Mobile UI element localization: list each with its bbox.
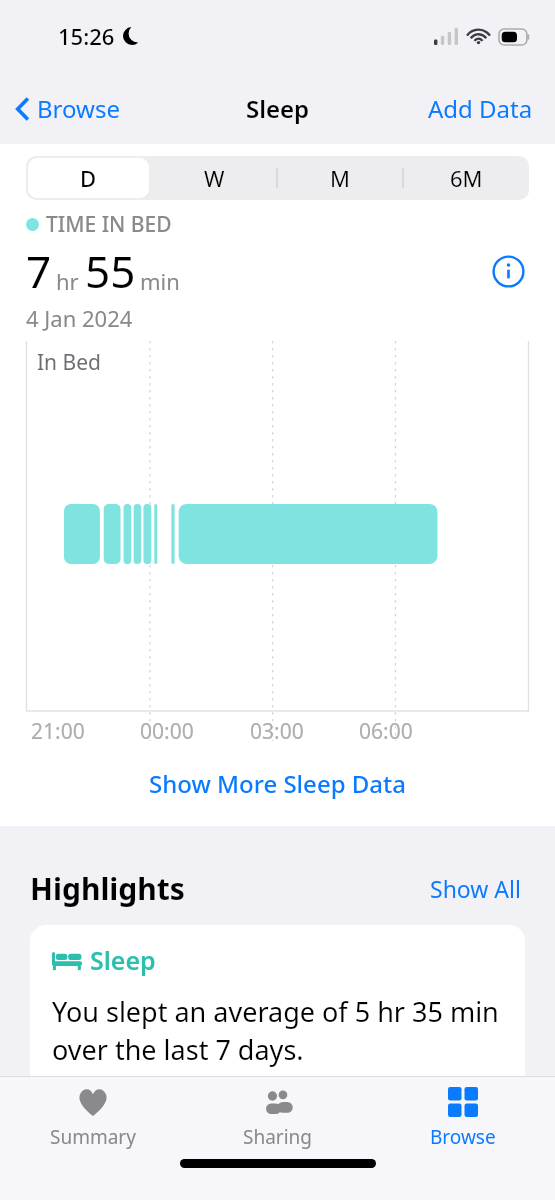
staticText: Browse xyxy=(37,92,120,125)
button[interactable]: D xyxy=(26,156,151,200)
staticText: Summary xyxy=(50,1124,136,1150)
button[interactable]: Sharing xyxy=(185,1077,370,1155)
staticText: Highlights xyxy=(30,868,185,909)
staticText: Browse xyxy=(430,1124,496,1150)
button[interactable]: Browse xyxy=(10,86,126,131)
staticText: In Bed xyxy=(37,348,101,377)
button[interactable]: M xyxy=(277,156,403,200)
staticText: Add Data xyxy=(428,92,533,125)
button[interactable]: Information xyxy=(488,251,529,292)
button[interactable]: W xyxy=(151,156,277,200)
staticText: Sleep xyxy=(90,943,156,977)
staticText: M xyxy=(330,163,350,193)
staticText: D xyxy=(80,163,97,193)
staticText: Sleep xyxy=(246,92,310,125)
button[interactable]: Browse xyxy=(370,1077,555,1155)
staticText: 55 xyxy=(85,241,136,301)
staticText: 15:26 xyxy=(58,21,115,51)
staticText: Sharing xyxy=(243,1124,313,1150)
staticText: Show All xyxy=(430,873,521,904)
button[interactable]: 6M xyxy=(403,156,529,200)
staticText: Show More Sleep Data xyxy=(149,767,406,800)
staticText: 00:00 xyxy=(140,717,194,741)
button[interactable]: Add Data xyxy=(420,86,541,131)
staticText: 4 Jan 2024 xyxy=(26,303,133,333)
button[interactable]: Sleep xyxy=(30,925,525,1175)
staticText: 7 xyxy=(26,241,52,301)
staticText: TIME IN BED xyxy=(46,210,172,239)
staticText: min xyxy=(140,266,180,296)
staticText: You slept an average of 5 hr 35 min over… xyxy=(52,993,503,1068)
staticText: 03:00 xyxy=(250,717,304,741)
staticText: 06:00 xyxy=(359,717,413,741)
staticText: W xyxy=(204,163,225,193)
button[interactable]: Show More Sleep Data xyxy=(0,759,555,808)
staticText: hr xyxy=(56,266,79,296)
staticText: Average xyxy=(52,1111,149,1145)
staticText: 21:00 xyxy=(31,717,85,741)
button[interactable]: Summary xyxy=(0,1077,185,1155)
button[interactable]: Show All xyxy=(426,869,525,908)
staticText: 6M xyxy=(450,163,483,193)
